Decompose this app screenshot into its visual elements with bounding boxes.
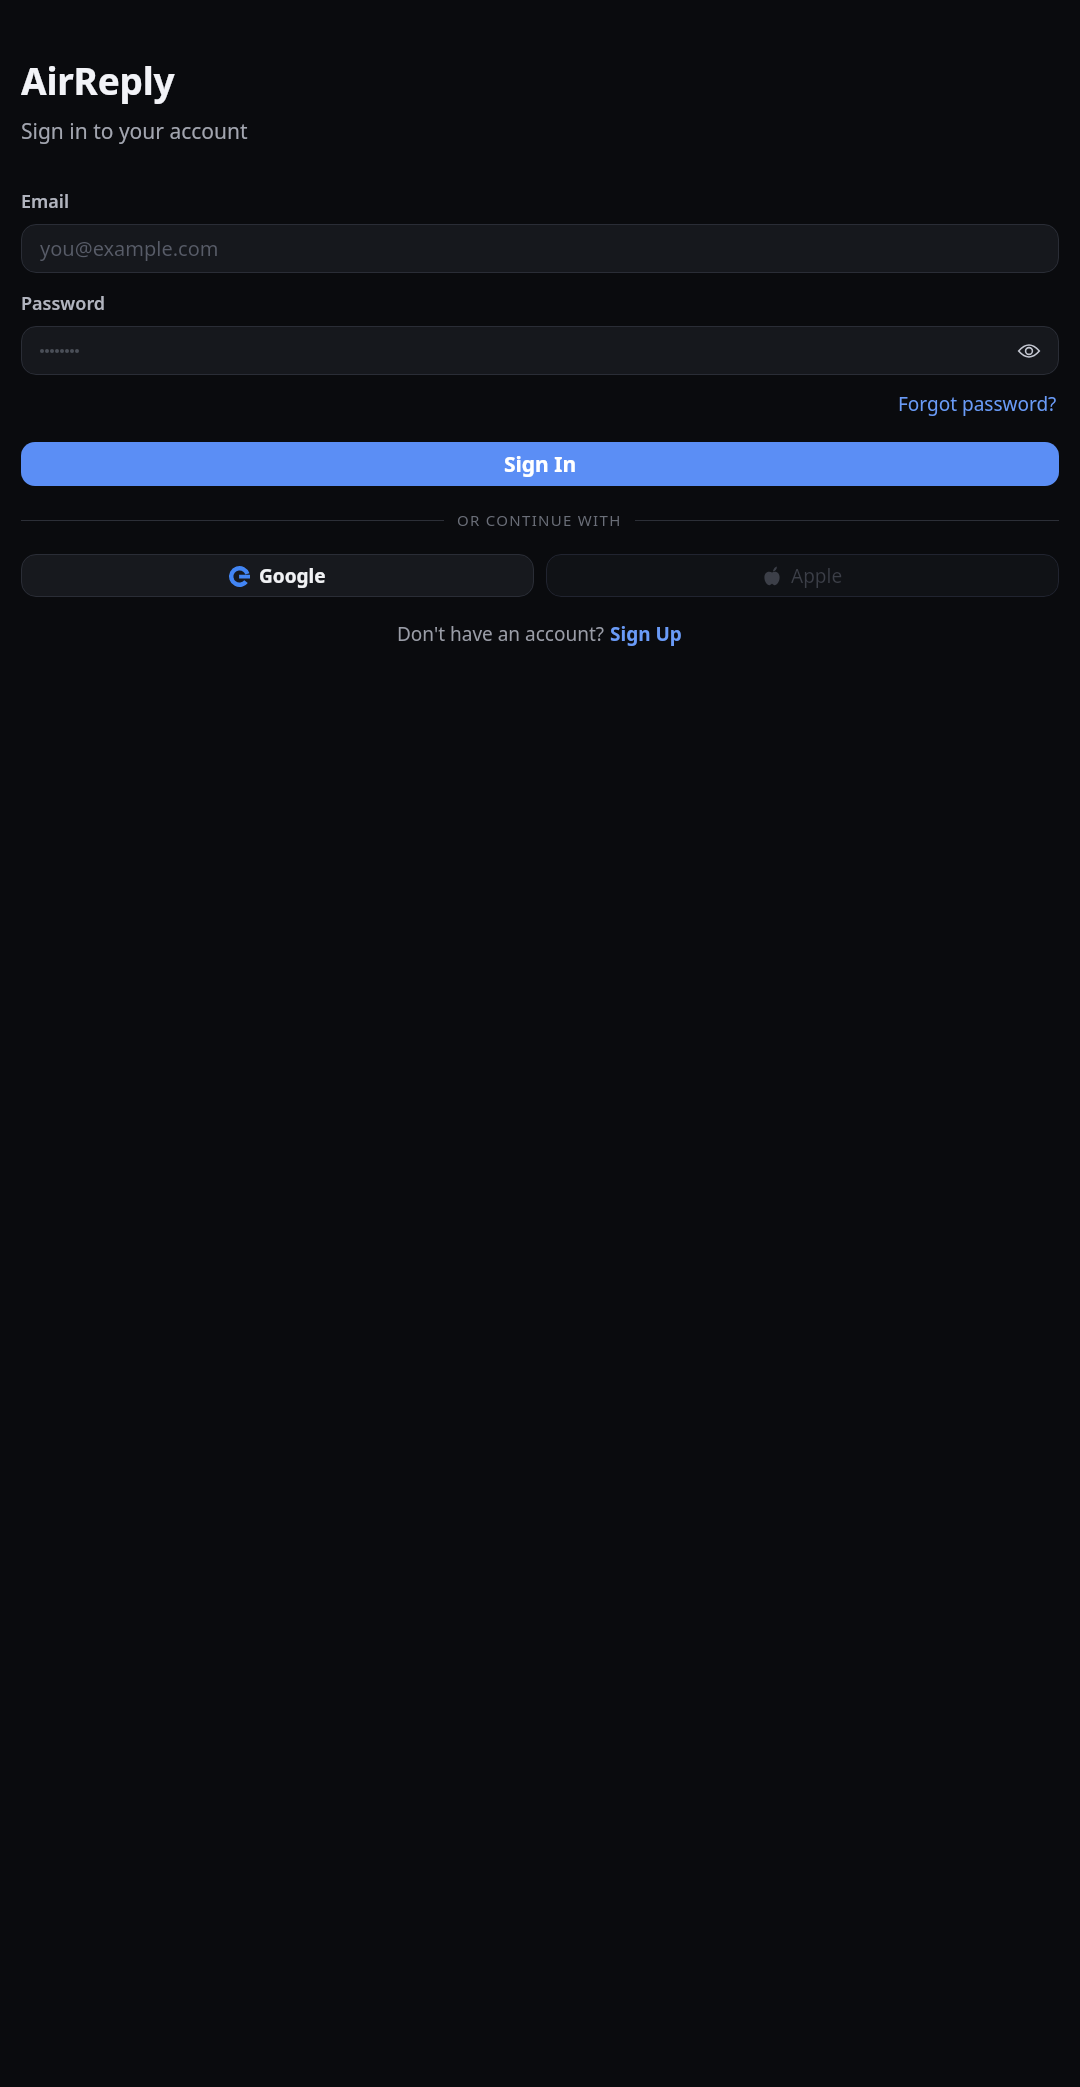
- button[interactable]: Show password: [1012, 334, 1046, 368]
- button[interactable]: Sign In: [21, 442, 1059, 486]
- staticText: Sign in to your account: [21, 117, 248, 146]
- staticText: Apple: [791, 563, 843, 589]
- button[interactable]: you@example.com: [21, 224, 1059, 273]
- staticText: you@example.com: [40, 235, 219, 262]
- staticText: Sign Up: [610, 621, 682, 647]
- button[interactable]: Show password: [21, 326, 1059, 375]
- staticText: AirReply: [21, 55, 175, 105]
- staticText: Don't have an account?: [397, 621, 609, 647]
- button[interactable]: Google: [21, 554, 534, 597]
- button[interactable]: Apple: [546, 554, 1059, 597]
- button[interactable]: Forgot password?: [896, 388, 1059, 420]
- button[interactable]: Sign Up: [609, 619, 683, 649]
- staticText: Sign In: [504, 450, 577, 479]
- staticText: Forgot password?: [898, 391, 1057, 417]
- staticText: OR CONTINUE WITH: [457, 510, 622, 530]
- staticText: Google: [259, 563, 326, 589]
- staticText: Password: [21, 291, 106, 316]
- staticText: Email: [21, 189, 70, 214]
